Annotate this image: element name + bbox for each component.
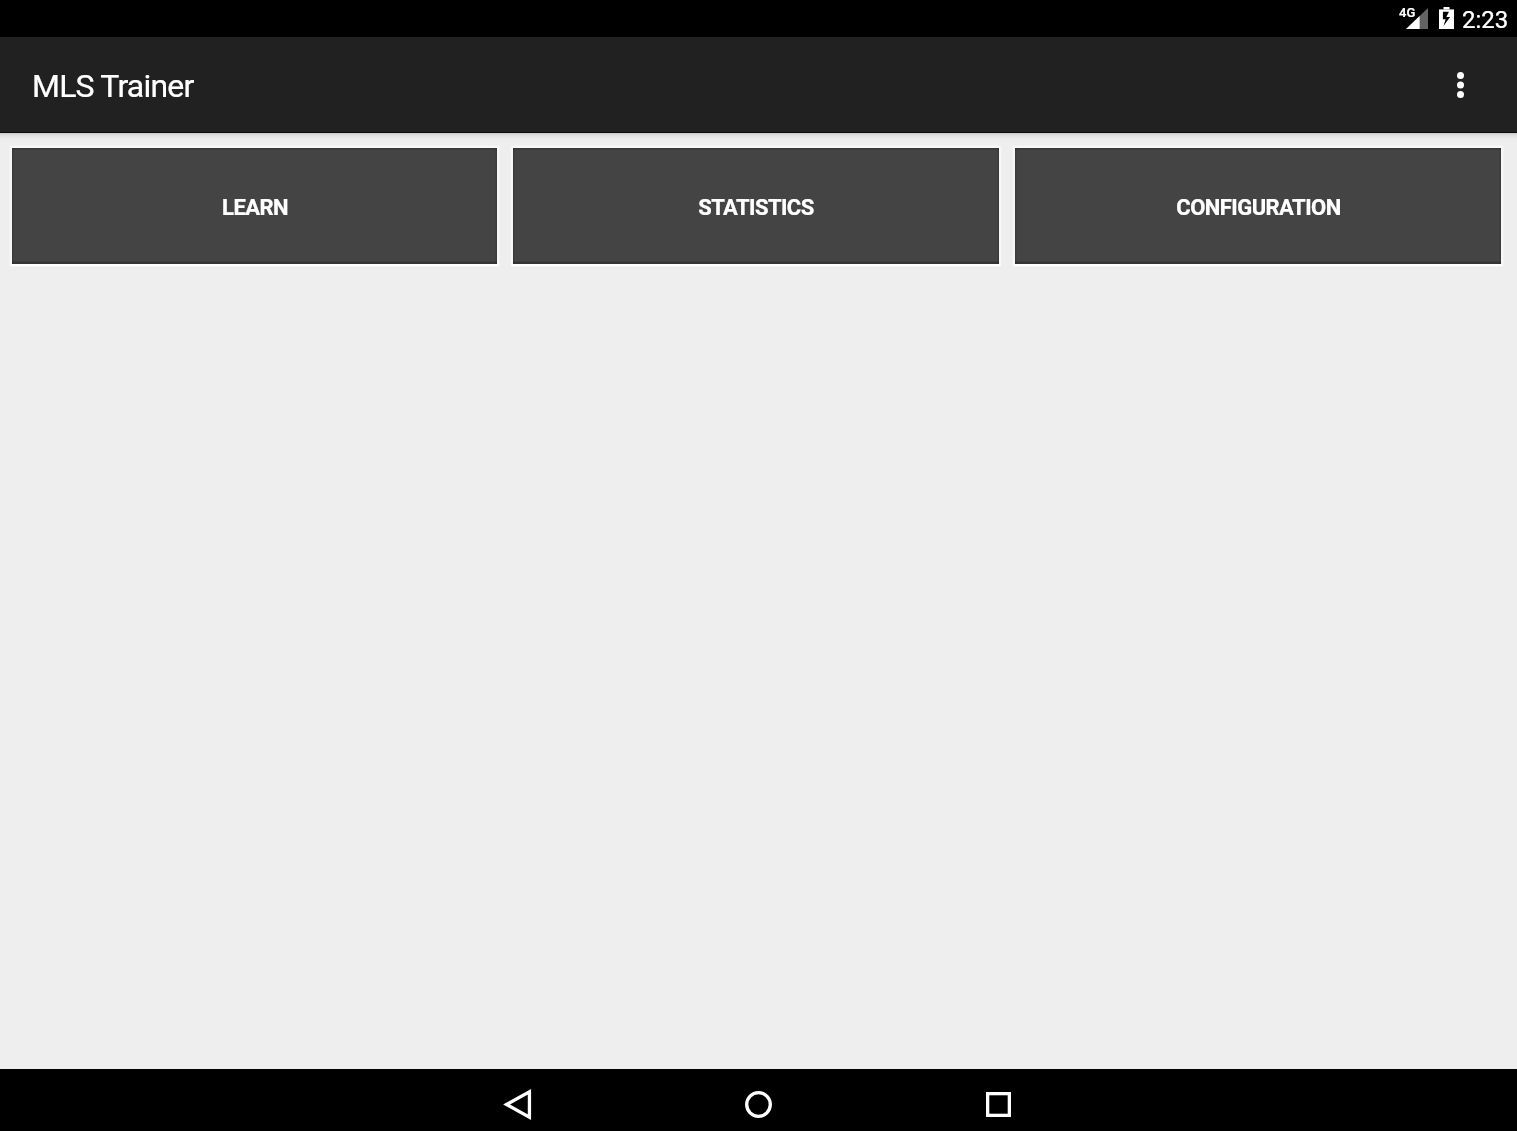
- button[interactable]: Home: [638, 1069, 878, 1131]
- staticText: LEARN: [222, 195, 288, 221]
- button[interactable]: Recent apps: [878, 1069, 1119, 1131]
- button[interactable]: Back: [398, 1069, 638, 1131]
- button[interactable]: STATISTICS: [513, 148, 999, 264]
- button[interactable]: LEARN: [12, 148, 497, 264]
- staticText: MLS Trainer: [32, 67, 194, 105]
- button[interactable]: CONFIGURATION: [1015, 148, 1501, 264]
- button[interactable]: More options: [1434, 37, 1487, 132]
- staticText: 2:23: [1462, 6, 1509, 34]
- staticText: CONFIGURATION: [1176, 195, 1341, 221]
- staticText: 4G: [1399, 5, 1416, 20]
- staticText: STATISTICS: [698, 195, 814, 221]
